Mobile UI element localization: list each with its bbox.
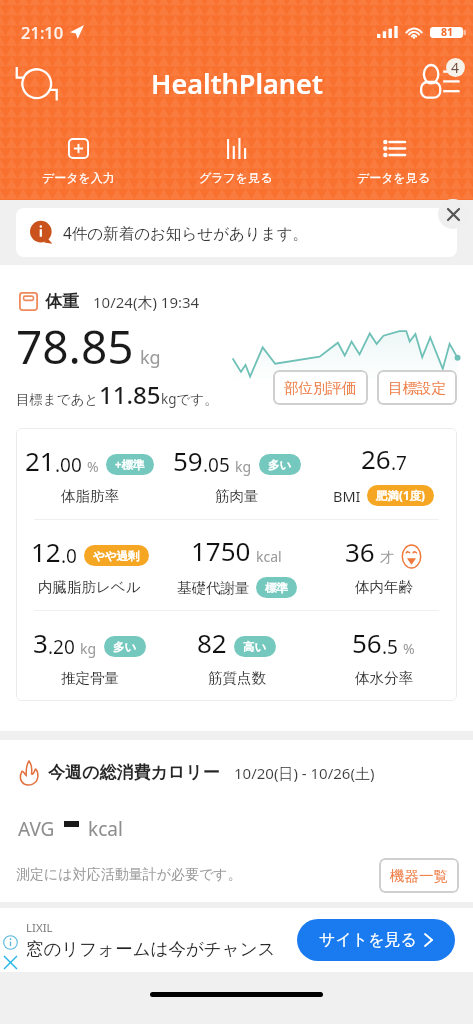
staticText: kgです。: [161, 390, 218, 408]
staticText: 59: [173, 443, 203, 478]
staticText: kg: [140, 345, 161, 370]
staticText: HealthPlanet: [151, 65, 323, 102]
button[interactable]: 82: [163, 611, 310, 701]
staticText: 56: [352, 625, 382, 660]
button[interactable]: 59: [163, 428, 310, 519]
button[interactable]: 36: [310, 520, 457, 610]
staticText: 78.85: [16, 315, 134, 378]
staticText: 目標まであと: [16, 391, 99, 408]
staticText: 10/24(木) 19:34: [93, 292, 200, 312]
staticText: 高い: [243, 640, 267, 654]
staticText: %: [403, 639, 415, 658]
staticText: LIXIL: [26, 920, 53, 936]
staticText: 1750: [191, 533, 251, 568]
button[interactable]: データを見る: [315, 128, 473, 190]
staticText: 4: [451, 58, 460, 77]
staticText: .20: [48, 634, 75, 660]
staticText: kcal: [256, 547, 282, 566]
button[interactable]: 機器一覧: [379, 858, 459, 893]
staticText: 多い: [113, 640, 137, 654]
staticText: 今週の総消費カロリー: [48, 762, 220, 783]
staticText: 82: [197, 625, 227, 660]
staticText: データを入力: [42, 170, 115, 185]
staticText: 11.85: [99, 378, 161, 411]
staticText: 目標設定: [388, 379, 446, 397]
staticText: 肥満(1度): [376, 488, 425, 504]
staticText: kg: [80, 639, 97, 658]
staticText: 26: [361, 441, 391, 476]
staticText: +標準: [115, 457, 145, 473]
staticText: 才: [380, 549, 394, 567]
staticText: .0: [61, 543, 77, 569]
staticText: BMI: [333, 486, 361, 506]
staticText: 体脂肪率: [61, 487, 119, 505]
staticText: グラフを見る: [199, 170, 273, 185]
staticText: データを見る: [357, 170, 431, 185]
staticText: kcal: [88, 816, 123, 842]
staticText: AVG: [18, 816, 55, 842]
staticText: 筋質点数: [208, 669, 266, 687]
staticText: 体重: [45, 291, 79, 312]
staticText: 81: [441, 25, 454, 39]
staticText: .05: [203, 452, 230, 478]
staticText: 測定には対応活動量計が必要です。: [16, 866, 242, 884]
staticText: 多い: [268, 458, 292, 472]
staticText: .00: [55, 452, 82, 478]
staticText: 機器一覧: [390, 867, 448, 885]
button[interactable]: グラフを見る: [157, 128, 315, 190]
button[interactable]: 目標設定: [377, 370, 457, 405]
button[interactable]: Sync: [12, 59, 60, 107]
button[interactable]: 部位別評価: [273, 370, 368, 405]
staticText: 推定骨量: [61, 669, 119, 687]
button[interactable]: 21: [16, 428, 163, 519]
staticText: 体水分率: [355, 669, 413, 687]
button[interactable]: 26: [310, 428, 457, 519]
staticText: kg: [235, 457, 252, 476]
staticText: 3: [33, 625, 48, 660]
staticText: 21:10: [21, 21, 64, 43]
staticText: 部位別評価: [284, 379, 357, 397]
staticText: 12: [31, 534, 61, 569]
staticText: 21: [25, 443, 55, 478]
staticText: 窓のリフォームは今がチャンス: [26, 938, 276, 960]
staticText: 内臓脂肪レベル: [38, 578, 141, 596]
staticText: 10/20(日) - 10/26(土): [234, 763, 375, 783]
button[interactable]: Account: [413, 57, 465, 109]
staticText: .7: [391, 450, 407, 476]
button[interactable]: 4件の新着のお知らせがあります。: [16, 208, 457, 257]
button[interactable]: Close ad: [3, 955, 18, 970]
staticText: やや過剰: [93, 549, 140, 563]
button[interactable]: 56: [310, 611, 457, 701]
staticText: サイトを見る: [319, 930, 417, 950]
button[interactable]: サイトを見る: [297, 919, 455, 961]
staticText: 体内年齢: [355, 578, 413, 596]
button[interactable]: 12: [16, 520, 163, 610]
other: Ad info: [3, 935, 18, 950]
button[interactable]: 1750: [163, 520, 310, 610]
staticText: 筋肉量: [215, 487, 259, 505]
staticText: 基礎代謝量: [177, 579, 250, 597]
button[interactable]: 3: [16, 611, 163, 701]
button[interactable]: データを入力: [0, 128, 157, 190]
staticText: %: [87, 457, 99, 476]
staticText: 4件の新着のお知らせがあります。: [63, 222, 308, 243]
staticText: .5: [382, 634, 398, 660]
button[interactable]: Close: [438, 199, 468, 229]
staticText: 標準: [265, 581, 288, 595]
staticText: 36: [345, 534, 375, 569]
